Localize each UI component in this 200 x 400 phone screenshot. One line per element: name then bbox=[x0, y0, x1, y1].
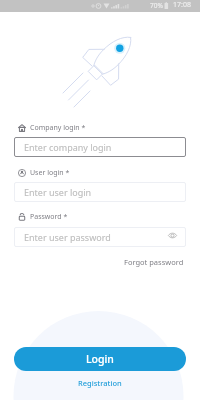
staticText: User login * bbox=[30, 168, 70, 178]
button[interactable]: Show password bbox=[168, 232, 177, 239]
staticText: 17:08 bbox=[173, 0, 191, 10]
button[interactable]: Registration bbox=[78, 378, 122, 388]
button[interactable]: Enter user login bbox=[14, 182, 186, 202]
staticText: Company login * bbox=[30, 123, 86, 133]
button[interactable]: Enter user password bbox=[14, 227, 186, 247]
staticText: 70% bbox=[150, 1, 163, 10]
staticText: Password * bbox=[30, 212, 68, 222]
button[interactable]: Login bbox=[14, 347, 186, 371]
button[interactable]: Enter company login bbox=[14, 137, 186, 157]
staticText: Enter user password bbox=[24, 231, 111, 243]
staticText: Enter company login bbox=[24, 141, 112, 153]
button[interactable]: Forgot password bbox=[124, 257, 184, 267]
staticText: Login bbox=[86, 352, 114, 366]
staticText: Enter user login bbox=[24, 186, 92, 198]
